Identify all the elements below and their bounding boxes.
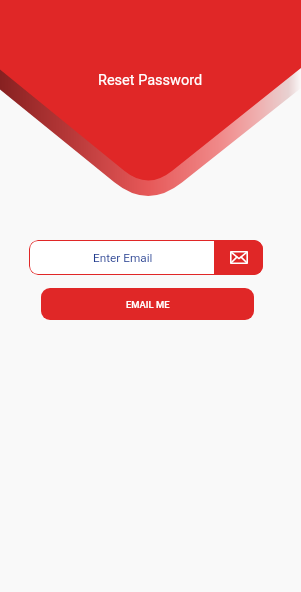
button[interactable]: Enter Email <box>29 240 263 275</box>
staticText: Reset Password <box>98 72 203 89</box>
staticText: EMAIL ME <box>126 299 170 310</box>
staticText: Enter Email <box>93 251 153 265</box>
button[interactable]: EMAIL ME <box>41 288 254 320</box>
button[interactable]: Send reset email <box>214 240 263 275</box>
